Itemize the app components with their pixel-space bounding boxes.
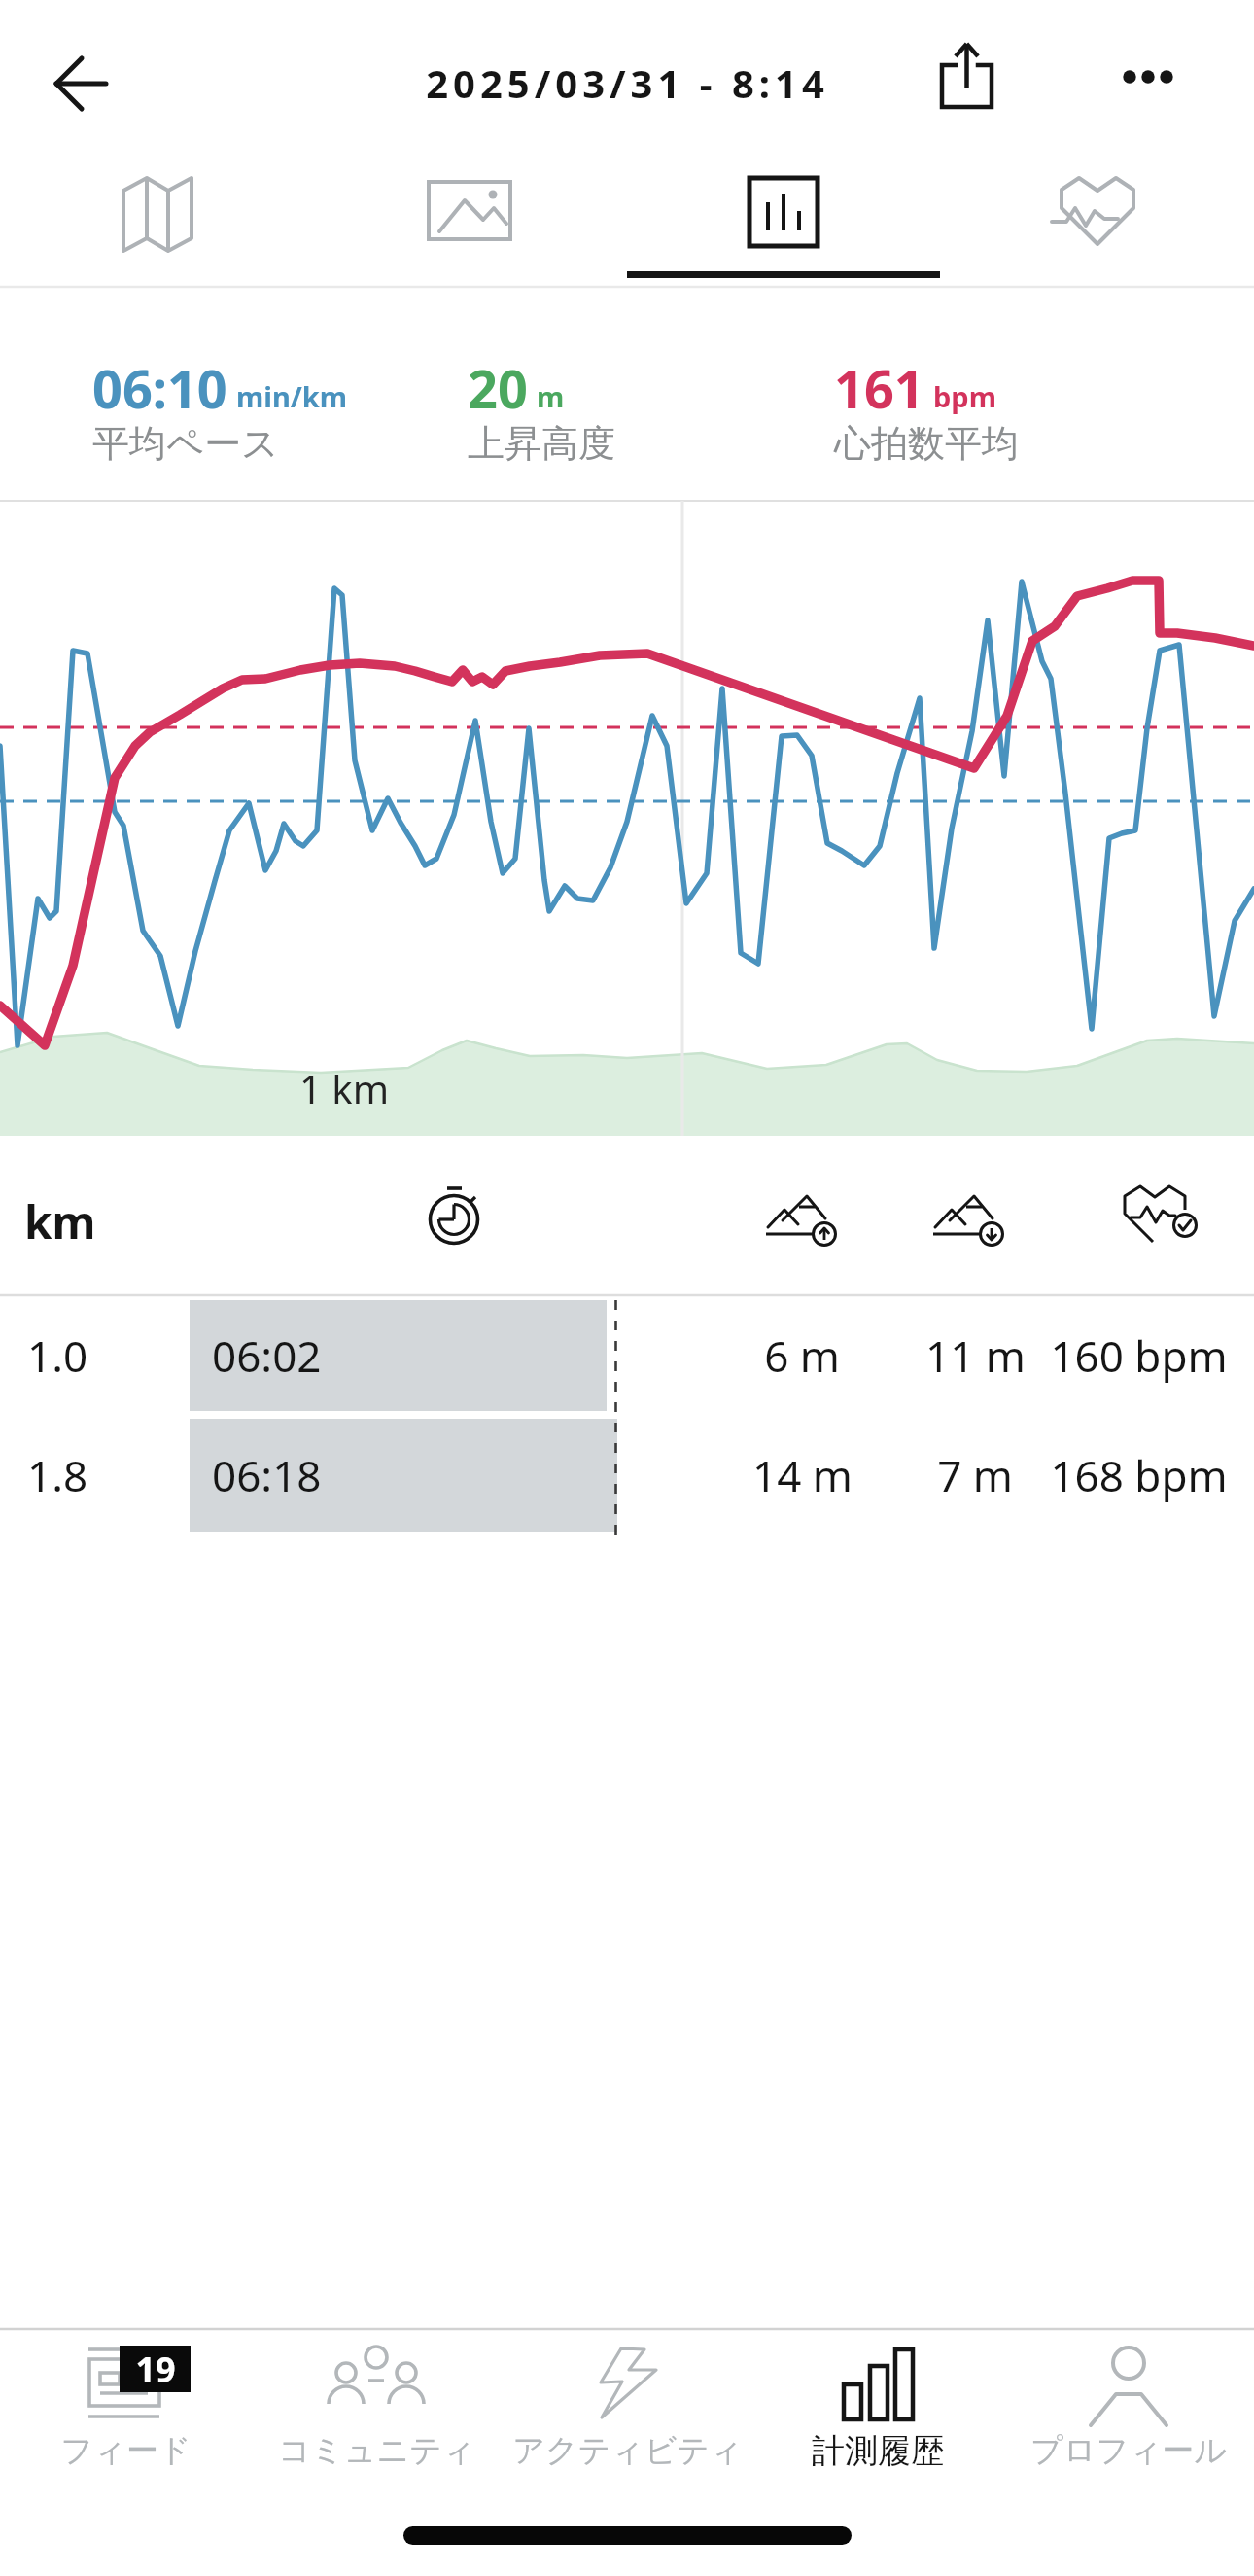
staticText: km (24, 1191, 96, 1253)
staticText: 1.8 (27, 1446, 88, 1504)
staticText: m (537, 377, 565, 415)
button[interactable] (0, 2332, 251, 2488)
staticText: 1.0 (27, 1326, 88, 1385)
staticText: 161 (834, 352, 924, 424)
button[interactable] (1003, 2332, 1254, 2488)
staticText: プロフィール (1030, 2430, 1227, 2471)
staticText: 計測履歴 (812, 2430, 944, 2472)
staticText: 2025/03/31 - 8:14 (426, 56, 829, 109)
staticText: 06:02 (212, 1326, 322, 1385)
staticText: コミュニティ (278, 2430, 475, 2471)
staticText: 160 bpm (1050, 1326, 1228, 1385)
button[interactable] (923, 34, 1011, 122)
staticText: 06:18 (212, 1446, 322, 1504)
staticText: 平均ペース (92, 420, 279, 467)
staticText: 11 m (925, 1326, 1026, 1385)
staticText: 19 (135, 2346, 176, 2393)
button[interactable] (1103, 34, 1191, 122)
button[interactable] (313, 151, 626, 282)
button[interactable] (0, 1417, 1254, 1534)
staticText: 20 (468, 352, 528, 424)
staticText: 14 m (752, 1446, 853, 1504)
staticText: 心拍数平均 (834, 420, 1019, 467)
staticText: min/km (236, 377, 348, 415)
button[interactable] (626, 151, 939, 282)
staticText: フィード (60, 2430, 192, 2471)
button[interactable] (0, 151, 313, 282)
staticText: 6 m (764, 1326, 840, 1385)
staticText: アクティビティ (512, 2430, 743, 2471)
button[interactable] (939, 151, 1252, 282)
button[interactable] (752, 2332, 1003, 2488)
button[interactable] (0, 1298, 1254, 1415)
staticText: bpm (933, 377, 996, 415)
staticText: 06:10 (92, 352, 227, 424)
button[interactable] (29, 39, 117, 126)
staticText: 168 bpm (1050, 1446, 1228, 1504)
button[interactable] (502, 2332, 752, 2488)
staticText: 上昇高度 (468, 420, 615, 467)
staticText: 1 km (299, 1062, 390, 1114)
button[interactable] (251, 2332, 502, 2488)
staticText: 7 m (937, 1446, 1013, 1504)
